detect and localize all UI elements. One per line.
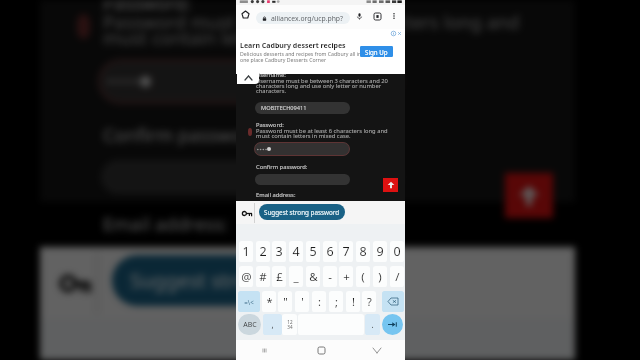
- button[interactable]: ;: [329, 291, 343, 312]
- staticText: +: [343, 269, 350, 285]
- button[interactable]: Next field: [382, 314, 403, 335]
- button[interactable]: 0: [390, 241, 404, 262]
- button[interactable]: 6: [323, 241, 337, 262]
- button[interactable]: Switch tabs: [370, 9, 384, 23]
- staticText: -: [328, 269, 332, 285]
- button[interactable]: ": [278, 291, 292, 312]
- staticText: £: [276, 269, 283, 285]
- staticText: :: [318, 294, 321, 309]
- staticText: _: [293, 269, 299, 285]
- staticText: Email address:: [103, 211, 228, 236]
- staticText: &: [309, 269, 318, 285]
- button[interactable]: [254, 142, 350, 156]
- button[interactable]: Scroll to top: [383, 178, 398, 192]
- staticText: ABC: [243, 320, 257, 330]
- staticText: ;: [335, 294, 338, 309]
- staticText: 4: [292, 243, 300, 260]
- button[interactable]: [101, 160, 401, 194]
- staticText: Learn Cadbury dessert recipes: [240, 41, 346, 51]
- button[interactable]: 9: [373, 241, 387, 262]
- staticText: 8: [359, 243, 367, 260]
- button[interactable]: Recent apps: [255, 341, 273, 359]
- staticText: ): [378, 269, 382, 285]
- button[interactable]: #: [256, 266, 270, 287]
- button[interactable]: Passwords: [49, 258, 100, 309]
- staticText: Password:: [103, 0, 191, 15]
- staticText: 0: [393, 243, 401, 260]
- button[interactable]: Voice search: [352, 9, 366, 23]
- staticText: @: [241, 269, 252, 285]
- button[interactable]: 8: [356, 241, 370, 262]
- staticText: Sign Up: [365, 48, 388, 56]
- button[interactable]: Suggest strong password: [112, 255, 385, 306]
- staticText: Email address:: [256, 191, 296, 199]
- staticText: #: [259, 269, 267, 285]
- staticText: Username must be between 3 characters an…: [256, 77, 388, 95]
- staticText: 5: [309, 243, 317, 260]
- staticText: 2: [259, 243, 267, 260]
- button[interactable]: [98, 59, 401, 104]
- staticText: Password must be at least 6 characters l…: [103, 9, 520, 50]
- button[interactable]: (: [356, 266, 370, 287]
- staticText: /: [395, 269, 400, 285]
- button[interactable]: MOBITECH09411: [255, 102, 350, 114]
- staticText: Password:: [256, 121, 284, 129]
- staticText: (: [361, 269, 365, 285]
- staticText: Confirm password:: [103, 122, 266, 147]
- button[interactable]: Home: [312, 341, 330, 359]
- button[interactable]: 2: [256, 241, 270, 262]
- button[interactable]: .: [365, 314, 380, 335]
- button[interactable]: Collapse ad: [237, 71, 259, 84]
- button[interactable]: +: [339, 266, 353, 287]
- button[interactable]: 5: [306, 241, 320, 262]
- staticText: Delicious desserts and recipes from Cadb…: [240, 50, 362, 64]
- button[interactable]: Suggest strong password: [259, 204, 345, 220]
- staticText: 9: [376, 243, 384, 260]
- button[interactable]: Home: [238, 7, 252, 21]
- button[interactable]: *: [262, 291, 276, 312]
- staticText: Suggest strong password: [264, 208, 340, 217]
- button[interactable]: Sign Up: [360, 46, 393, 57]
- staticText: 1: [242, 243, 250, 260]
- button[interactable]: -: [323, 266, 337, 287]
- button[interactable]: &: [306, 266, 320, 287]
- button[interactable]: _: [289, 266, 303, 287]
- button[interactable]: 4: [289, 241, 303, 262]
- staticText: Confirm password:: [256, 163, 308, 171]
- staticText: 12 34: [287, 319, 293, 330]
- button[interactable]: Scroll to top: [505, 173, 553, 218]
- staticText: 3: [275, 243, 283, 260]
- button[interactable]: ): [373, 266, 387, 287]
- button[interactable]: ,: [263, 314, 282, 335]
- button[interactable]: 7: [339, 241, 353, 262]
- button[interactable]: =\<: [238, 291, 260, 312]
- staticText: =\<: [244, 298, 254, 306]
- staticText: MOBITECH09411: [261, 104, 307, 112]
- button[interactable]: Hide keyboard: [368, 341, 386, 359]
- staticText: ': [301, 294, 304, 309]
- staticText: !: [352, 294, 355, 309]
- button[interactable]: Passwords: [239, 205, 255, 221]
- staticText: Password must be at least 6 characters l…: [256, 127, 388, 140]
- button[interactable]: !: [346, 291, 360, 312]
- button[interactable]: Backspace: [382, 291, 404, 312]
- button[interactable]: ': [295, 291, 309, 312]
- button[interactable]: /: [390, 266, 404, 287]
- staticText: .: [371, 319, 374, 330]
- button[interactable]: 12 34: [282, 314, 297, 335]
- staticText: ": [283, 294, 288, 309]
- button[interactable]: @: [239, 266, 253, 287]
- staticText: Suggest strong password: [130, 267, 368, 294]
- staticText: Username:: [256, 71, 286, 79]
- button[interactable]: ABC: [238, 314, 261, 335]
- staticText: ,: [271, 319, 274, 330]
- button[interactable]: 1: [239, 241, 253, 262]
- button[interactable]: 3: [272, 241, 286, 262]
- button[interactable]: £: [272, 266, 286, 287]
- button[interactable]: :: [312, 291, 326, 312]
- button[interactable]: [255, 174, 350, 185]
- button[interactable]: alliancex.org/ucp.php?: [256, 12, 350, 24]
- button[interactable]: More options: [387, 9, 401, 23]
- button[interactable]: ?: [362, 291, 376, 312]
